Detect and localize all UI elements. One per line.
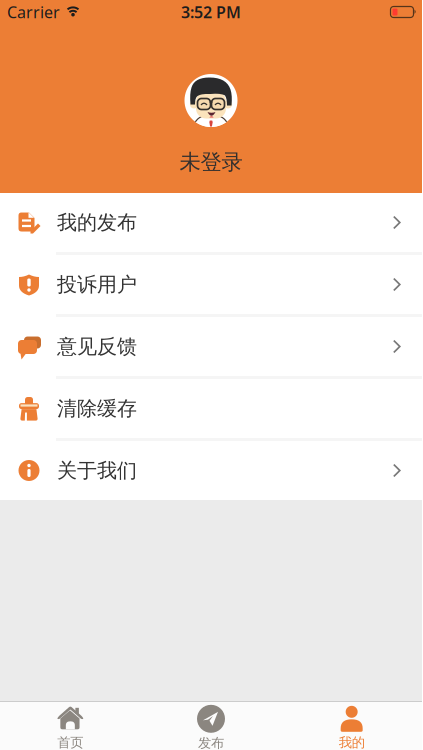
button[interactable]: 未登录 [0,0,422,193]
staticText: 我的发布 [57,210,137,235]
staticText: 意见反馈 [57,334,137,359]
staticText: 发布 [198,735,224,750]
button[interactable]: 首页 [0,705,141,750]
button[interactable]: 我的 [281,705,422,750]
button[interactable]: 关于我们 [0,441,422,500]
button[interactable]: 投诉用户 [0,255,422,314]
staticText: 投诉用户 [57,272,137,297]
staticText: 清除缓存 [57,396,137,421]
staticText: 3:52 PM [181,1,241,23]
button[interactable]: 我的发布 [0,193,422,252]
staticText: 关于我们 [57,458,137,483]
staticText: Carrier [7,1,60,23]
button[interactable]: 清除缓存 [0,379,422,438]
staticText: 首页 [57,734,83,750]
button[interactable]: 发布 [141,705,281,750]
button[interactable]: 意见反馈 [0,317,422,376]
staticText: 未登录 [179,149,242,175]
staticText: 我的 [339,734,365,750]
